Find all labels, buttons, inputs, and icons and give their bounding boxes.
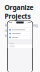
button[interactable]: Project list item: [8, 32, 32, 35]
button[interactable]: Project list item: [8, 28, 32, 32]
staticText: Archive, star & tag issues received from…: [4, 22, 37, 38]
button[interactable]: Project list item: [8, 36, 32, 39]
staticText: Organize Projects: [4, 3, 33, 21]
